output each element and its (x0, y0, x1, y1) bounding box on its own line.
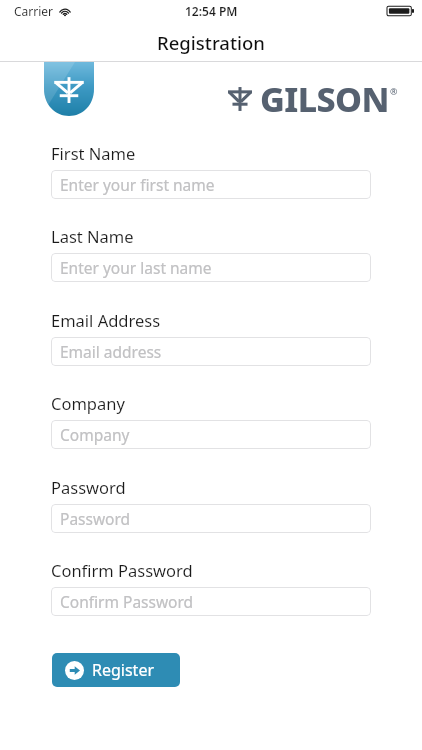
staticText: Enter your first name (60, 174, 215, 195)
button[interactable]: Enter your last name (51, 253, 371, 282)
button[interactable]: Password (51, 504, 371, 533)
staticText: Registration (157, 30, 265, 55)
staticText: Password (60, 508, 131, 529)
staticText: Confirm Password (60, 591, 194, 612)
staticText: GILSON (260, 76, 389, 122)
staticText: Email address (60, 341, 162, 362)
button[interactable]: Confirm Password (51, 587, 371, 616)
staticText: Confirm Password (51, 559, 193, 581)
staticText: Company (60, 424, 130, 445)
staticText: Last Name (51, 225, 134, 247)
staticText: Register (92, 659, 155, 681)
staticText: Enter your last name (60, 257, 212, 278)
button[interactable]: Email address (51, 337, 371, 366)
button[interactable]: Register (52, 653, 180, 687)
staticText: 12:54 PM (185, 3, 238, 19)
staticText: Email Address (51, 309, 161, 331)
button[interactable]: Company (51, 420, 371, 449)
other: Gilson (225, 76, 398, 122)
button[interactable]: Enter your first name (51, 170, 371, 199)
staticText: Company (51, 392, 125, 414)
staticText: ® (390, 85, 398, 97)
staticText: Password (51, 476, 126, 498)
staticText: First Name (51, 142, 136, 164)
staticText: Carrier (14, 3, 54, 19)
other: Gilson shield logo (44, 62, 94, 116)
